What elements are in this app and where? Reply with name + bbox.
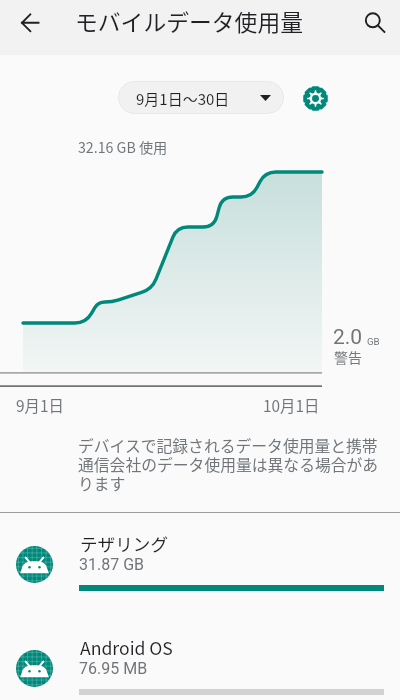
staticText: 31.87 GB — [79, 555, 145, 574]
staticText: 9月1日〜30日 — [136, 88, 230, 110]
staticText: モバイルデータ使用量 — [75, 5, 303, 38]
button[interactable]: Settings — [298, 81, 332, 115]
button[interactable]: 9月1日〜30日 — [118, 81, 284, 114]
staticText: 2.0 — [333, 325, 363, 350]
staticText: デバイスで記録されるデータ使用量と携帯通信会社のデータ使用量は異なる場合がありま… — [78, 434, 381, 495]
staticText: 9月1日 — [16, 394, 64, 416]
staticText: 警告 — [334, 347, 362, 367]
button[interactable]: Search — [350, 0, 395, 45]
staticText: 10月1日 — [263, 394, 320, 416]
staticText: 76.95 MB — [79, 659, 148, 678]
staticText: GB — [367, 336, 380, 347]
staticText: テザリング — [80, 531, 168, 556]
button[interactable]: Back — [7, 0, 52, 45]
staticText: Android OS — [80, 635, 173, 660]
button[interactable]: Android OS — [0, 649, 400, 700]
staticText: 32.16 GB 使用 — [78, 137, 168, 158]
button[interactable]: テザリング — [0, 545, 400, 649]
